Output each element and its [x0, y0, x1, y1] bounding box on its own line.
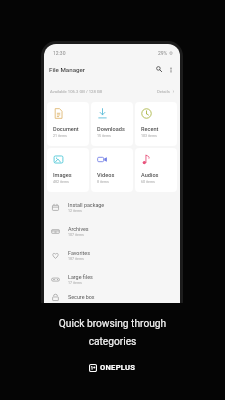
staticText: 107 items [68, 233, 84, 237]
staticText: 12:30 [53, 50, 66, 56]
button[interactable]: Install package [44, 195, 180, 219]
staticText: Large files [68, 274, 93, 280]
button[interactable]: Images [47, 148, 89, 192]
button[interactable]: Large files [44, 267, 180, 291]
staticText: 15 items [97, 134, 111, 138]
staticText: 29% [158, 50, 168, 56]
staticText: 12 items [68, 209, 82, 213]
staticText: Secure box [68, 294, 95, 300]
button[interactable]: Archives [44, 219, 180, 243]
staticText: 103 items [141, 134, 157, 138]
staticText: Quick browsing through categories [0, 318, 225, 347]
staticText: 17 items [68, 281, 82, 285]
staticText: Favorites [68, 250, 90, 256]
staticText: Archives [68, 226, 89, 232]
staticText: 21 items [53, 134, 67, 138]
button[interactable]: Available 106.3 GB / 128 GB [50, 88, 175, 95]
staticText: 60 items [141, 180, 155, 184]
button[interactable]: Recent [135, 102, 177, 146]
staticText: 187 items [68, 257, 84, 261]
staticText: Available 106.3 GB / 128 GB [50, 89, 103, 94]
button[interactable]: Favorites [44, 243, 180, 267]
button[interactable]: Downloads [91, 102, 133, 146]
staticText: File Manager [49, 66, 85, 73]
staticText: Details [157, 89, 170, 94]
button[interactable]: Audios [135, 148, 177, 192]
staticText: 8 items [97, 180, 109, 184]
staticText: Audios [141, 172, 159, 179]
button[interactable]: Search [153, 63, 165, 75]
staticText: Install package [68, 202, 105, 208]
staticText: Recent [141, 126, 159, 133]
staticText: Document [53, 126, 79, 133]
staticText: Videos [97, 172, 115, 179]
button[interactable]: More options [165, 64, 176, 75]
staticText: ONEPLUS [100, 363, 136, 372]
button[interactable]: Document [47, 102, 89, 146]
staticText: 482 items [53, 180, 69, 184]
staticText: Images [53, 172, 72, 179]
staticText: Downloads [97, 126, 125, 133]
button[interactable]: Videos [91, 148, 133, 192]
button[interactable]: Secure box [44, 291, 180, 303]
